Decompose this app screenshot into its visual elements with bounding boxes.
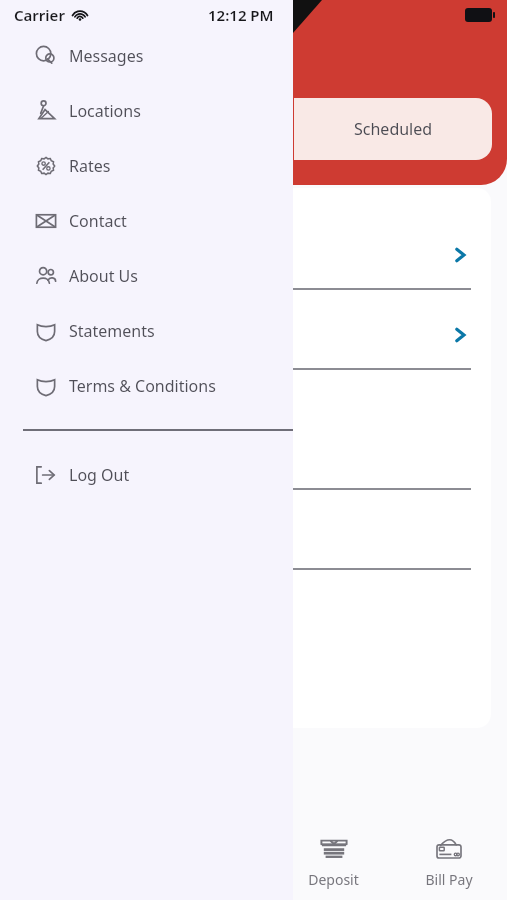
staticText: Carrier: [14, 5, 65, 25]
staticText: Scheduled: [354, 118, 433, 140]
button[interactable]: Open details: [14, 324, 491, 370]
button[interactable]: Scheduled: [294, 98, 492, 160]
button[interactable]: Bill Pay: [391, 834, 507, 889]
button[interactable]: Deposit: [276, 834, 391, 889]
staticText: Statements: [69, 320, 155, 342]
button[interactable]: Rates: [0, 138, 293, 193]
button[interactable]: [14, 444, 491, 490]
staticText: Deposit: [308, 870, 359, 889]
other: Open details: [451, 246, 469, 264]
button[interactable]: Log Out: [0, 447, 293, 502]
staticText: Log Out: [69, 464, 130, 486]
button[interactable]: Terms & Conditions: [0, 358, 293, 413]
staticText: Terms & Conditions: [69, 375, 216, 397]
button[interactable]: Contact: [0, 193, 293, 248]
button[interactable]: Open details: [14, 244, 491, 290]
other: Open details: [451, 326, 469, 344]
staticText: Messages: [69, 45, 144, 67]
button[interactable]: About Us: [0, 248, 293, 303]
button[interactable]: Locations: [0, 83, 293, 138]
button[interactable]: Statements: [0, 303, 293, 358]
button[interactable]: [14, 524, 491, 570]
button[interactable]: Messages: [0, 28, 293, 83]
staticText: Locations: [69, 100, 141, 122]
staticText: About Us: [69, 265, 138, 287]
staticText: Rates: [69, 155, 111, 177]
staticText: Bill Pay: [425, 870, 473, 889]
staticText: 12:12 PM: [208, 5, 274, 25]
staticText: Contact: [69, 210, 127, 232]
